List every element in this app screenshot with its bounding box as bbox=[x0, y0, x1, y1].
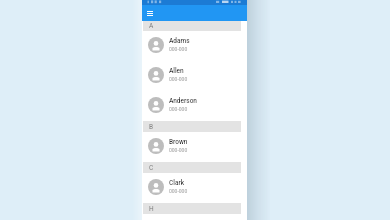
staticText: B bbox=[149, 123, 154, 131]
staticText: 000-000 bbox=[169, 76, 188, 82]
staticText: C bbox=[149, 164, 154, 172]
button[interactable]: Allen bbox=[143, 61, 241, 91]
staticText: 000-000 bbox=[169, 188, 188, 194]
button[interactable]: Adams bbox=[143, 31, 241, 61]
staticText: Allen bbox=[169, 67, 184, 75]
button[interactable]: Brown bbox=[143, 132, 241, 162]
button[interactable]: Open navigation menu bbox=[147, 11, 153, 16]
button[interactable]: A bbox=[143, 21, 241, 31]
staticText: Clark bbox=[169, 179, 185, 187]
button[interactable]: C bbox=[143, 162, 241, 173]
staticText: Brown bbox=[169, 138, 188, 146]
staticText: H bbox=[149, 205, 154, 213]
staticText: Adams bbox=[169, 37, 190, 45]
button[interactable]: B bbox=[143, 121, 241, 132]
button[interactable]: Clark bbox=[143, 173, 241, 203]
staticText: 000-000 bbox=[169, 46, 188, 52]
staticText: Anderson bbox=[169, 97, 197, 105]
button[interactable]: H bbox=[143, 203, 241, 214]
button[interactable]: Open navigation menu bbox=[142, 5, 247, 21]
button[interactable]: Anderson bbox=[143, 91, 241, 121]
staticText: 000-000 bbox=[169, 106, 188, 112]
staticText: 000-000 bbox=[169, 147, 188, 153]
staticText: A bbox=[149, 22, 154, 30]
